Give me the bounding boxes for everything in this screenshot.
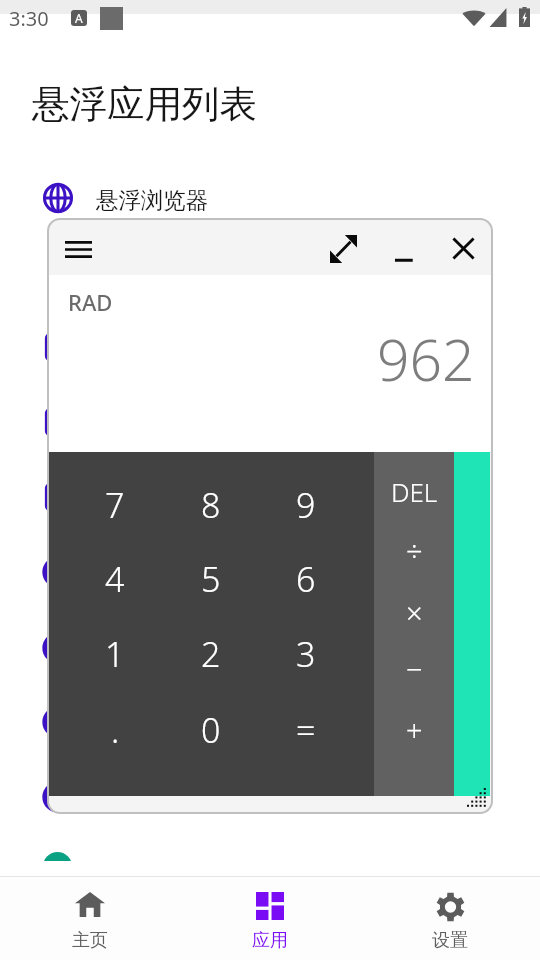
staticText: 应用 (252, 929, 288, 952)
button[interactable] (0, 612, 540, 684)
button[interactable]: 8 (163, 468, 259, 542)
button[interactable] (0, 386, 540, 458)
button[interactable] (0, 686, 540, 758)
staticText: 962 (377, 320, 475, 398)
button[interactable]: Close (445, 231, 483, 265)
button[interactable] (0, 461, 540, 533)
button[interactable]: × (374, 582, 454, 642)
button[interactable]: 设置 (360, 877, 540, 960)
button[interactable]: − (374, 638, 454, 698)
button[interactable]: DEL (374, 461, 454, 521)
button[interactable]: + (374, 699, 454, 759)
button[interactable]: 7 (67, 468, 163, 542)
button[interactable]: Expand (325, 231, 363, 265)
button[interactable]: 5 (163, 542, 259, 616)
button[interactable] (0, 761, 540, 833)
staticText: 3:30 (9, 5, 49, 32)
staticText: . (111, 707, 120, 753)
button[interactable]: 2 (163, 617, 259, 691)
staticText: 悬浮浏览器 (96, 186, 208, 214)
button[interactable]: Menu (59, 232, 95, 264)
button[interactable]: 4 (67, 542, 163, 616)
button[interactable] (0, 536, 540, 608)
button[interactable]: 悬浮浏览器 (0, 162, 540, 234)
staticText: × (406, 593, 423, 632)
button[interactable]: . (67, 693, 163, 767)
staticText: 设置 (432, 929, 468, 952)
staticText: 1 (105, 631, 125, 677)
button[interactable]: ÷ (374, 520, 454, 580)
staticText: = (296, 707, 316, 753)
button[interactable]: Equals (454, 452, 490, 796)
staticText: 6 (296, 556, 316, 602)
staticText: A (75, 10, 83, 26)
button[interactable]: 主页 (0, 877, 180, 960)
button[interactable]: Minimize (387, 231, 425, 265)
button[interactable]: 1 (67, 617, 163, 691)
staticText: 主页 (72, 929, 108, 952)
button[interactable]: 9 (258, 468, 354, 542)
staticText: 0 (201, 707, 221, 753)
button[interactable] (0, 311, 540, 383)
button[interactable]: = (258, 693, 354, 767)
button[interactable]: 3 (258, 617, 354, 691)
staticText: 9 (296, 482, 316, 528)
staticText: DEL (391, 474, 438, 509)
staticText: 7 (105, 482, 125, 528)
staticText: 4 (105, 556, 125, 602)
staticText: 3 (296, 631, 316, 677)
button[interactable]: 应用 (180, 877, 360, 960)
staticText: 2 (201, 631, 221, 677)
staticText: + (406, 710, 423, 749)
staticText: RAD (68, 287, 113, 317)
button[interactable]: 0 (163, 693, 259, 767)
button[interactable]: 6 (258, 542, 354, 616)
staticText: ÷ (406, 531, 423, 570)
staticText: 8 (201, 482, 221, 528)
staticText: − (406, 649, 423, 688)
staticText: 悬浮应用列表 (32, 81, 257, 128)
staticText: 5 (201, 556, 221, 602)
